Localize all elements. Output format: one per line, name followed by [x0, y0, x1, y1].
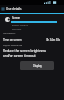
staticText: Reduce the screen brightness and/or scre… — [3, 49, 47, 57]
button[interactable]: Display — [20, 61, 54, 70]
staticText: Screen — [12, 16, 21, 20]
button[interactable]: Up — [0, 5, 64, 13]
staticText: 3h 34m 50s — [46, 38, 61, 42]
staticText: Use details — [6, 7, 22, 11]
staticText: USE DETAILS — [3, 32, 16, 35]
staticText: Time on screen — [3, 38, 22, 42]
other: Up — [1, 7, 5, 11]
staticText: Display — [33, 64, 42, 68]
staticText: Battery used by backlight — [12, 24, 29, 30]
staticText: ADJUST POWER USE — [3, 44, 23, 47]
